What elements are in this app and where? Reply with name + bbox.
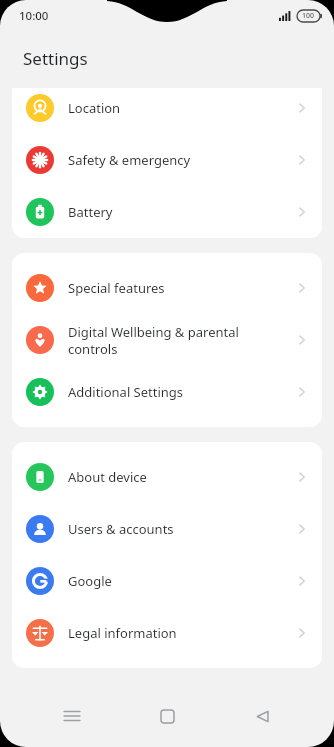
staticText: Additional Settings xyxy=(68,383,286,401)
staticText: About device xyxy=(68,468,286,486)
staticText: Digital Wellbeing & parental controls xyxy=(68,323,286,358)
button[interactable]: Location xyxy=(12,88,322,134)
button[interactable]: Safety & emergency xyxy=(12,134,322,186)
button[interactable]: Additional Settings xyxy=(12,366,322,418)
staticText: Battery xyxy=(68,203,286,221)
staticText: Location xyxy=(68,99,286,117)
button[interactable]: Home xyxy=(144,693,190,739)
button[interactable]: Battery xyxy=(12,186,322,238)
button[interactable]: Users & accounts xyxy=(12,503,322,555)
button[interactable]: Legal information xyxy=(12,607,322,659)
button[interactable]: Google xyxy=(12,555,322,607)
staticText: Special features xyxy=(68,279,286,297)
button[interactable]: Recent apps xyxy=(49,693,95,739)
staticText: 10:00 xyxy=(19,8,49,24)
button[interactable]: Special features xyxy=(12,262,322,314)
button[interactable]: Digital Wellbeing & parental controls xyxy=(12,314,322,366)
staticText: 100 xyxy=(302,11,315,21)
button[interactable]: About device xyxy=(12,451,322,503)
staticText: Legal information xyxy=(68,624,286,642)
button[interactable]: Back xyxy=(239,693,285,739)
staticText: Settings xyxy=(23,47,88,70)
staticText: Users & accounts xyxy=(68,520,286,538)
staticText: Safety & emergency xyxy=(68,151,286,169)
staticText: Google xyxy=(68,572,286,590)
